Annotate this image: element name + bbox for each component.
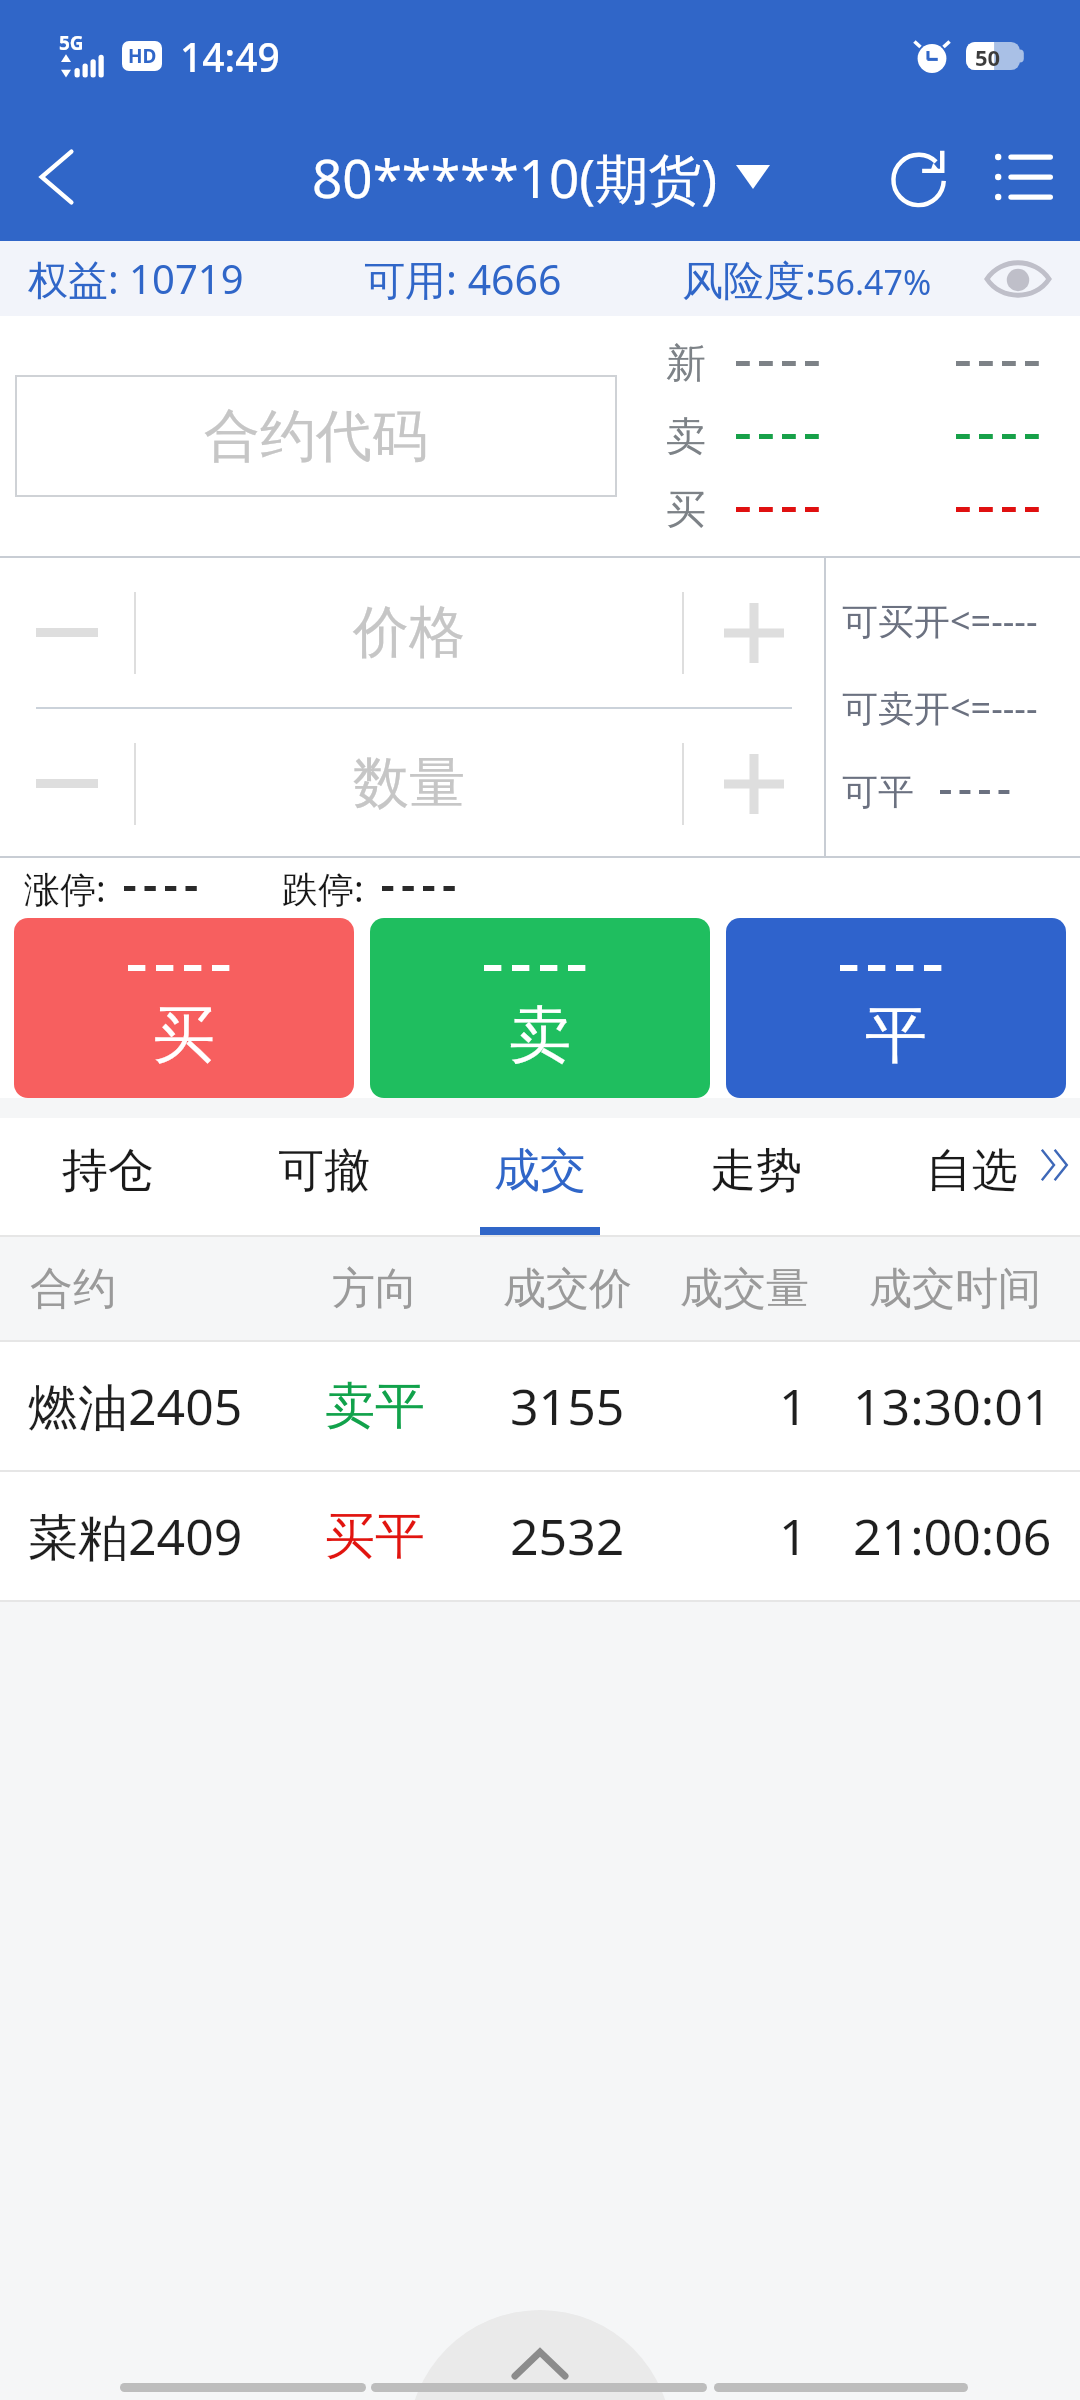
staticText: 合约代码 <box>204 401 428 472</box>
staticText: 数量 <box>353 748 465 819</box>
staticText: 50 <box>975 42 1001 70</box>
staticText: 买 <box>666 484 706 534</box>
staticText: 可撤 <box>278 1142 370 1200</box>
button[interactable]: 平 <box>726 918 1066 1098</box>
button[interactable]: 可撤 <box>216 1118 432 1237</box>
staticText: 买平 <box>325 1505 425 1568</box>
button[interactable]: 成交 <box>432 1118 648 1237</box>
staticText: 自选 <box>926 1142 1018 1200</box>
staticText: HD <box>128 43 157 69</box>
staticText: 买 <box>153 996 215 1074</box>
button[interactable]: More tabs <box>1034 1140 1074 1190</box>
staticText: 菜粕2409 <box>28 1502 243 1570</box>
staticText: 80*****10(期货) <box>312 141 718 213</box>
staticText: 风险度: <box>682 251 816 307</box>
staticText: 可买开<=---- <box>842 596 1080 645</box>
staticText: 1 <box>779 1372 808 1440</box>
button[interactable]: Increase 数量 <box>684 709 824 858</box>
staticText: 3155 <box>510 1372 625 1440</box>
staticText: 2532 <box>510 1502 625 1570</box>
button[interactable]: Refresh <box>856 112 968 241</box>
button[interactable]: 80*****10(期货) <box>312 141 770 213</box>
staticText: 成交价 <box>503 1262 632 1316</box>
button[interactable]: 走势 <box>648 1118 864 1237</box>
button[interactable]: 价格 <box>136 558 682 707</box>
staticText: 跌停: <box>282 864 364 913</box>
staticText: 权益: 10719 <box>28 251 244 306</box>
staticText: 卖 <box>666 411 706 461</box>
button[interactable]: Decrease 价格 <box>0 558 134 707</box>
staticText: 可用: 4666 <box>364 251 562 307</box>
staticText: 新 <box>666 338 706 388</box>
staticText: 14:49 <box>180 30 280 83</box>
staticText: 可平 <box>842 769 914 814</box>
staticText: 走势 <box>710 1142 802 1200</box>
button[interactable]: 数量 <box>136 709 682 858</box>
button[interactable]: 合约代码 <box>15 375 617 497</box>
staticText: 1 <box>779 1502 808 1570</box>
staticText: 卖平 <box>325 1375 425 1438</box>
staticText: 合约 <box>30 1262 116 1316</box>
button[interactable]: 卖 <box>370 918 710 1098</box>
button[interactable]: Expand panel <box>408 2310 672 2400</box>
button[interactable]: 自选 <box>864 1118 1080 1237</box>
button[interactable]: Back <box>0 112 118 241</box>
staticText: 成交 <box>494 1142 586 1200</box>
staticText: 成交量 <box>680 1262 809 1316</box>
staticText: 价格 <box>353 597 465 668</box>
button[interactable]: 持仓 <box>0 1118 216 1237</box>
staticText: 成交时间 <box>869 1262 1041 1316</box>
button[interactable]: 买 <box>14 918 354 1098</box>
staticText: 可卖开<=---- <box>842 683 1080 732</box>
staticText: 持仓 <box>62 1142 154 1200</box>
staticText: 方向 <box>332 1262 418 1316</box>
staticText: 56.47% <box>816 259 932 305</box>
button[interactable]: 菜粕2409 <box>0 1472 1080 1600</box>
staticText: 涨停: <box>24 864 106 913</box>
staticText: 21:00:06 <box>853 1502 1052 1570</box>
button[interactable]: Increase 价格 <box>684 558 824 707</box>
staticText: 卖 <box>509 996 571 1074</box>
staticText: 5G <box>59 30 84 56</box>
staticText: 燃油2405 <box>28 1372 243 1440</box>
button[interactable]: 燃油2405 <box>0 1342 1080 1470</box>
staticText: 平 <box>865 996 927 1074</box>
button[interactable]: Decrease 数量 <box>0 709 134 858</box>
button[interactable]: Toggle balance visibility <box>956 241 1080 316</box>
staticText: 13:30:01 <box>853 1372 1052 1440</box>
button[interactable]: Menu <box>968 112 1080 241</box>
